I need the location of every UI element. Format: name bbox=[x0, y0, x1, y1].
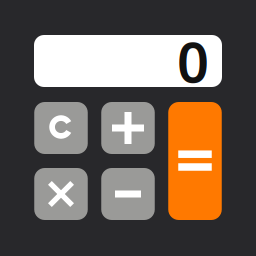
button[interactable]: Plus bbox=[101, 102, 155, 154]
staticText: 0 bbox=[177, 24, 209, 98]
button[interactable]: Multiply bbox=[34, 168, 88, 220]
button[interactable]: Clear bbox=[34, 102, 88, 154]
button[interactable]: Equals bbox=[168, 102, 222, 220]
button[interactable]: Minus bbox=[101, 168, 155, 220]
